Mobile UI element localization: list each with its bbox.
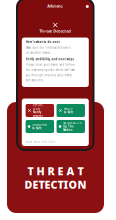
staticText: Notify Insurer (33, 110, 43, 118)
staticText: T H R E A T (27, 164, 83, 178)
staticText: Some more info here (26, 140, 56, 144)
staticText: REPORT SCAM (33, 103, 43, 110)
staticText: SECURE ACCTS (63, 121, 81, 125)
button[interactable]: SECURE ACCTS (56, 120, 85, 133)
staticText: Here's what to do next (26, 40, 60, 44)
staticText: to Safe (64, 110, 74, 114)
staticText: Up The Stakes (63, 125, 74, 132)
button[interactable]: SWITCH (56, 104, 85, 117)
staticText: to Safe (32, 126, 42, 130)
staticText: on another device. (26, 51, 52, 54)
staticText: STRENGTHEN (32, 123, 47, 126)
staticText: you through securing your device (26, 73, 73, 77)
staticText: DETECTION (24, 177, 86, 192)
staticText: Allstate. (47, 3, 63, 9)
button[interactable]: Close (84, 3, 91, 10)
staticText: Verify credibility, and next steps (26, 57, 74, 61)
button[interactable]: STRENGTHEN (26, 120, 54, 133)
staticText: Make sure the link that follows is (26, 46, 71, 49)
staticText: Threat Detected (39, 28, 71, 34)
staticText: Please close your device and follow (26, 63, 75, 67)
staticText: SWITCH (64, 107, 73, 110)
staticText: and accounts. (26, 78, 44, 82)
staticText: the next steps guide which will take (26, 68, 76, 72)
button[interactable]: REPORT SCAM (26, 104, 54, 117)
